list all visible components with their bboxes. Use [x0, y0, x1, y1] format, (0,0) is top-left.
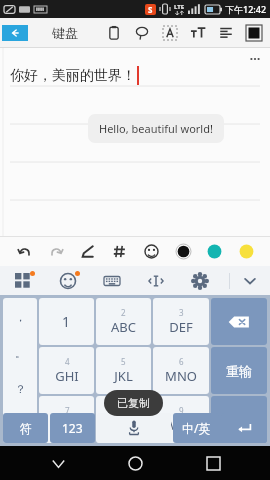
- staticText: 0: [235, 411, 243, 429]
- button[interactable]: 1: [39, 298, 94, 345]
- staticText: 你好，美丽的世界！: [10, 67, 136, 85]
- staticText: LTE: [174, 3, 185, 11]
- button[interactable]: Clipboard: [100, 18, 128, 48]
- staticText: 5: [121, 356, 126, 367]
- button[interactable]: 4: [39, 347, 94, 394]
- staticText: JKL: [114, 367, 133, 385]
- button[interactable]: 5: [96, 347, 151, 394]
- button[interactable]: 符: [3, 413, 48, 443]
- button[interactable]: Hello, beautiful world!: [99, 121, 213, 136]
- button[interactable]: Apps: [8, 266, 38, 295]
- button[interactable]: 。: [3, 335, 37, 371]
- button[interactable]: ？: [3, 371, 37, 407]
- button[interactable]: Text size: [184, 18, 212, 48]
- staticText: 。: [15, 346, 26, 360]
- staticText: 中/英: [182, 420, 211, 436]
- staticText: 8: [121, 405, 126, 416]
- button[interactable]: More options: [246, 50, 264, 68]
- staticText: 符: [20, 421, 32, 436]
- staticText: ？: [15, 382, 26, 396]
- button[interactable]: 2: [96, 298, 151, 345]
- staticText: DEF: [169, 318, 193, 336]
- button[interactable]: 6: [153, 347, 209, 394]
- button[interactable]: 中/英: [173, 413, 219, 443]
- button[interactable]: Tag: [105, 236, 133, 266]
- staticText: 123: [62, 420, 83, 436]
- staticText: 重输: [226, 363, 252, 379]
- button[interactable]: Recent apps: [193, 446, 233, 480]
- staticText: 6: [179, 356, 184, 367]
- button[interactable]: Settings: [185, 266, 215, 295]
- staticText: ！: [15, 418, 26, 432]
- button[interactable]: Redo: [42, 236, 70, 266]
- button[interactable]: Text select: [156, 18, 184, 48]
- button[interactable]: Home: [115, 446, 155, 480]
- staticText: S: [148, 4, 153, 15]
- button[interactable]: ，: [3, 298, 37, 335]
- button[interactable]: Pen: [73, 236, 101, 266]
- button[interactable]: 3: [153, 298, 209, 345]
- button[interactable]: 重输: [211, 347, 267, 394]
- button[interactable]: 123: [50, 413, 95, 443]
- button[interactable]: 0: [211, 396, 267, 443]
- button[interactable]: Teal: [200, 236, 228, 266]
- button[interactable]: Voice input: [97, 413, 171, 443]
- staticText: 4: [65, 356, 70, 367]
- button[interactable]: Hide keyboard: [230, 266, 270, 295]
- button[interactable]: Backspace: [211, 298, 267, 345]
- staticText: 2: [121, 307, 126, 318]
- button[interactable]: 7: [39, 396, 94, 443]
- staticText: 已复制: [117, 396, 150, 410]
- button[interactable]: Emoji: [137, 236, 165, 266]
- button[interactable]: Back: [38, 446, 78, 480]
- button[interactable]: Black: [169, 236, 197, 266]
- button[interactable]: Align: [212, 18, 240, 48]
- button[interactable]: Back: [0, 18, 30, 48]
- button[interactable]: ！: [3, 407, 37, 443]
- button[interactable]: Keyboard layout: [97, 266, 127, 295]
- staticText: 7: [65, 405, 70, 416]
- staticText: 1: [62, 312, 71, 331]
- button[interactable]: Yellow: [232, 236, 260, 266]
- staticText: TUV: [111, 416, 136, 434]
- staticText: Hello, beautiful world!: [99, 121, 213, 136]
- staticText: MNO: [165, 367, 197, 385]
- button[interactable]: 9: [153, 396, 209, 443]
- button[interactable]: Undo: [10, 236, 38, 266]
- staticText: PQRS: [50, 416, 84, 434]
- button[interactable]: Cursor: [141, 266, 171, 295]
- button[interactable]: Color: [240, 18, 268, 48]
- staticText: WXYZ: [164, 416, 199, 434]
- staticText: 9: [179, 405, 184, 416]
- staticText: ，: [15, 310, 26, 324]
- staticText: GHI: [55, 367, 79, 385]
- button[interactable]: Emoji: [53, 266, 83, 295]
- button[interactable]: Enter: [221, 413, 267, 443]
- button[interactable]: Lasso: [128, 18, 156, 48]
- staticText: ABC: [111, 318, 136, 336]
- staticText: 键盘: [52, 25, 78, 41]
- staticText: 下午12:42: [225, 3, 267, 15]
- button[interactable]: 8: [96, 396, 151, 443]
- staticText: 3: [179, 307, 184, 318]
